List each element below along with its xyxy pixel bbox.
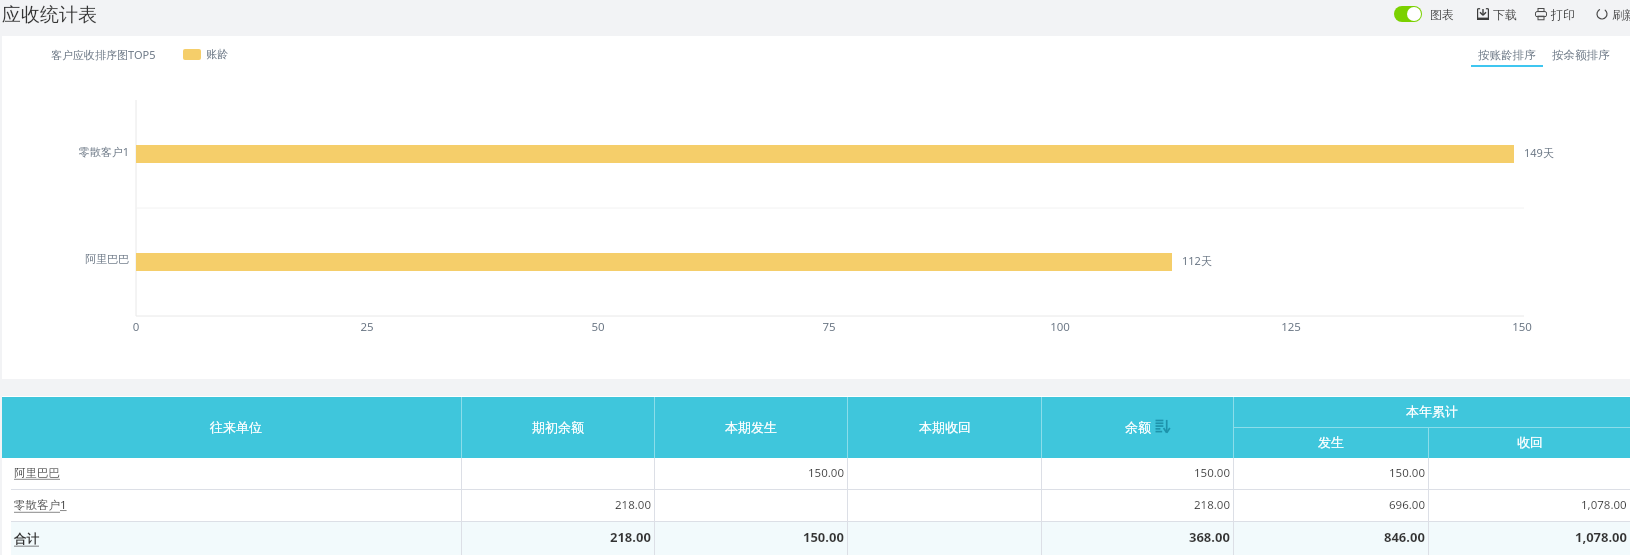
staticText: 218.00	[610, 528, 651, 546]
staticText: 1,078.00	[1581, 497, 1627, 513]
button[interactable]: 发生	[1234, 428, 1428, 458]
staticText: 图表	[1430, 7, 1454, 22]
staticText: 零散客户1	[14, 497, 67, 513]
staticText: 刷新	[1612, 7, 1630, 22]
staticText: 阿里巴巴	[19, 252, 129, 266]
staticText: 75	[804, 319, 854, 335]
button[interactable]: 往来单位	[0, 397, 461, 458]
staticText: 150.00	[803, 528, 844, 546]
staticText: 发生	[1318, 434, 1344, 450]
button[interactable]: 期初余额	[462, 397, 654, 458]
staticText: 余额	[1125, 419, 1151, 435]
staticText: 按余额排序	[1552, 48, 1610, 62]
button[interactable]: 收回	[1429, 428, 1630, 458]
staticText: 零散客户1	[19, 144, 129, 159]
button[interactable]: 零散客户1	[0, 490, 1630, 521]
staticText: 150.00	[1389, 465, 1425, 481]
staticText: 本期发生	[725, 419, 777, 435]
button[interactable]: 余额	[1042, 397, 1233, 458]
other: 打印	[1535, 8, 1547, 20]
staticText: 368.00	[1189, 528, 1230, 546]
staticText: 125	[1266, 319, 1316, 335]
staticText: 50	[573, 319, 623, 335]
button[interactable]: 按账龄排序	[1471, 47, 1543, 63]
staticText: 0	[111, 319, 161, 335]
staticText: 218.00	[615, 497, 651, 513]
button[interactable]: 本年累计	[1234, 397, 1630, 427]
button[interactable]: 下载	[1477, 5, 1517, 23]
button[interactable]: 打印	[1535, 5, 1575, 23]
staticText: 应收统计表	[2, 3, 97, 27]
staticText: 客户应收排序图TOP5	[51, 47, 156, 61]
other: 刷新	[1596, 8, 1608, 20]
staticText: 期初余额	[532, 419, 584, 435]
button[interactable]: 本期发生	[655, 397, 847, 458]
button[interactable]: 阿里巴巴	[0, 458, 1630, 489]
staticText: 往来单位	[210, 419, 262, 435]
staticText: 696.00	[1389, 497, 1425, 513]
staticText: 218.00	[1194, 497, 1230, 513]
staticText: 本期收回	[919, 419, 971, 435]
staticText: 阿里巴巴	[14, 466, 60, 480]
staticText: 账龄	[206, 47, 228, 61]
staticText: 下载	[1493, 7, 1517, 22]
staticText: 1,078.00	[1575, 528, 1627, 546]
button[interactable]: 刷新	[1596, 5, 1630, 23]
staticText: 100	[1035, 319, 1085, 335]
staticText: 本年累计	[1406, 403, 1458, 419]
staticText: 150.00	[808, 465, 844, 481]
staticText: 150	[1497, 319, 1547, 335]
staticText: 25	[342, 319, 392, 335]
staticText: 112天	[1182, 253, 1212, 268]
staticText: 收回	[1517, 434, 1543, 450]
staticText: 打印	[1551, 7, 1575, 22]
button[interactable]: 合计	[0, 522, 1630, 555]
other: 排序	[1155, 419, 1170, 434]
staticText: 149天	[1524, 145, 1554, 160]
button[interactable]: 按余额排序	[1545, 47, 1617, 63]
staticText: 合计	[14, 531, 39, 547]
staticText: 846.00	[1384, 528, 1425, 546]
button[interactable]: 本期收回	[848, 397, 1041, 458]
other: 下载	[1477, 8, 1489, 20]
button[interactable]: 图表	[1394, 5, 1454, 23]
staticText: 按账龄排序	[1478, 48, 1536, 62]
staticText: 150.00	[1194, 465, 1230, 481]
